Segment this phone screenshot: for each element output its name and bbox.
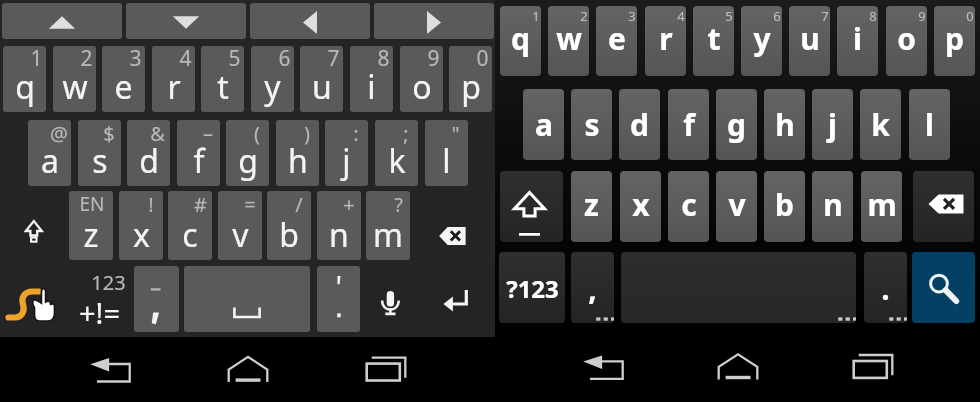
staticText: k — [871, 104, 890, 145]
button[interactable]: y — [741, 6, 782, 76]
staticText: o — [412, 65, 432, 109]
button[interactable]: Space — [184, 266, 310, 332]
button[interactable]: ! — [119, 191, 163, 260]
button[interactable]: Search — [912, 252, 975, 323]
button[interactable]: x — [620, 171, 661, 242]
staticText: x — [133, 213, 150, 257]
staticText: 5 — [725, 7, 733, 25]
button[interactable]: / — [267, 191, 311, 260]
button[interactable]: i — [837, 6, 878, 76]
button[interactable]: Symbols — [499, 252, 565, 323]
button[interactable]: q — [500, 6, 541, 76]
staticText: 8 — [869, 7, 877, 25]
button[interactable]: e — [596, 6, 637, 76]
button[interactable]: Shift — [500, 171, 563, 242]
button[interactable]: u — [789, 6, 830, 76]
staticText: b — [279, 213, 299, 257]
button[interactable]: g — [716, 89, 757, 160]
button[interactable]: c — [668, 171, 709, 242]
button[interactable]: Move down — [126, 3, 246, 39]
button[interactable]: ; — [375, 120, 418, 186]
button[interactable]: o — [886, 6, 927, 76]
button[interactable]: Recent apps — [340, 337, 432, 402]
staticText: z — [584, 184, 599, 225]
staticText: c — [182, 213, 198, 257]
button[interactable]: n — [812, 171, 853, 242]
button[interactable]: w — [548, 6, 589, 76]
button[interactable]: Comma — [134, 266, 179, 332]
button[interactable]: $ — [78, 120, 121, 186]
staticText: – — [203, 120, 213, 147]
button[interactable]: h — [764, 89, 805, 160]
staticText: p — [461, 65, 481, 109]
button[interactable]: Back — [557, 332, 649, 397]
button[interactable]: z — [571, 171, 612, 242]
button[interactable]: v — [716, 171, 757, 242]
button[interactable]: l — [909, 89, 950, 160]
button[interactable]: Voice input — [367, 265, 410, 335]
button[interactable]: t — [693, 6, 734, 76]
button[interactable]: Recent apps — [827, 332, 919, 397]
button[interactable]: f — [668, 89, 709, 160]
button[interactable]: 0 — [449, 46, 492, 112]
staticText: 9 — [427, 46, 440, 73]
button[interactable]: 1 — [3, 46, 46, 112]
staticText: m — [373, 213, 403, 257]
staticText: l — [925, 104, 934, 145]
button[interactable]: Backspace — [913, 171, 974, 242]
button[interactable]: 4 — [152, 46, 195, 112]
button[interactable]: 3 — [102, 46, 145, 112]
button[interactable]: Home — [202, 337, 294, 402]
button[interactable]: k — [860, 89, 901, 160]
button[interactable]: Symbols — [69, 267, 130, 332]
button[interactable]: m — [861, 171, 902, 242]
button[interactable]: EN — [69, 191, 113, 260]
button[interactable]: b — [764, 171, 805, 242]
button[interactable]: Enter — [416, 265, 491, 335]
button[interactable]: d — [619, 89, 660, 160]
button[interactable]: ? — [366, 191, 410, 260]
button[interactable]: p — [934, 6, 975, 76]
button[interactable]: + — [317, 191, 361, 260]
button[interactable]: , — [571, 252, 614, 323]
staticText: 0 — [476, 46, 489, 73]
staticText: ; — [403, 120, 409, 147]
button[interactable]: 6 — [251, 46, 294, 112]
button[interactable]: & — [127, 120, 170, 186]
button[interactable]: s — [571, 89, 612, 160]
button[interactable]: " — [425, 120, 468, 186]
staticText: EN — [79, 191, 105, 217]
button[interactable]: . — [864, 252, 907, 323]
button[interactable]: Period — [317, 266, 360, 332]
button[interactable]: Move left — [250, 3, 370, 39]
button[interactable]: ) — [276, 120, 319, 186]
button[interactable]: = — [218, 191, 262, 260]
button[interactable]: r — [645, 6, 686, 76]
button[interactable]: Move right — [374, 3, 494, 39]
button[interactable]: Swype gesture — [3, 265, 63, 335]
button[interactable]: # — [168, 191, 212, 260]
staticText: j — [828, 104, 837, 145]
button[interactable]: Space — [621, 252, 856, 323]
button[interactable]: : — [325, 120, 368, 186]
button[interactable]: 9 — [400, 46, 443, 112]
button[interactable]: 7 — [300, 46, 343, 112]
staticText: 123 — [91, 269, 126, 296]
button[interactable]: @ — [28, 120, 71, 186]
button[interactable]: – — [177, 120, 220, 186]
button[interactable]: Back — [64, 337, 156, 402]
button[interactable]: ( — [226, 120, 269, 186]
button[interactable]: a — [523, 89, 564, 160]
button[interactable]: j — [812, 89, 853, 160]
staticText: t — [217, 65, 229, 109]
button[interactable]: 8 — [350, 46, 393, 112]
staticText: g — [238, 139, 258, 183]
button[interactable]: Home — [692, 332, 784, 397]
button[interactable]: Move up — [2, 3, 122, 39]
button[interactable]: Backspace — [415, 191, 491, 260]
button[interactable]: Shift — [3, 191, 64, 260]
staticText: 3 — [628, 7, 636, 25]
staticText: i — [853, 18, 862, 59]
button[interactable]: 5 — [201, 46, 244, 112]
button[interactable]: 2 — [53, 46, 96, 112]
